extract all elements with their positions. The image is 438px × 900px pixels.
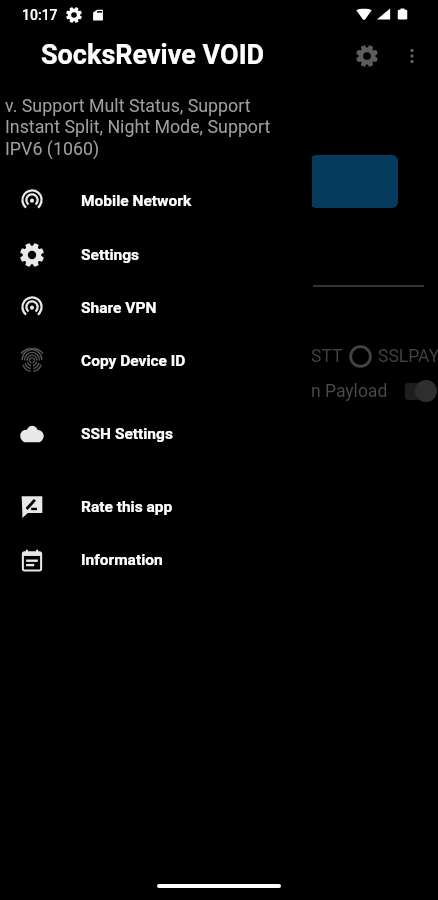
staticText: SocksRevive VOID — [41, 39, 265, 71]
button[interactable]: Information — [0, 536, 312, 584]
staticText: Share VPN — [81, 299, 157, 317]
button[interactable]: Settings — [344, 33, 390, 79]
staticText: n Payload — [311, 381, 388, 402]
staticText: 10:17 — [22, 7, 58, 23]
button[interactable]: SSH Settings — [0, 410, 312, 458]
button[interactable]: Share VPN — [0, 284, 312, 332]
button[interactable]: More options — [390, 34, 434, 78]
staticText: SSH Settings — [81, 425, 173, 443]
staticText: Mobile Network — [81, 192, 192, 210]
staticText: Settings — [81, 246, 140, 264]
staticText: Copy Device ID — [81, 352, 186, 370]
staticText: SSLPAY — [378, 346, 438, 367]
staticText: STT — [311, 346, 343, 367]
button[interactable]: Rate this app — [0, 483, 312, 531]
staticText: Rate this app — [81, 498, 173, 516]
button[interactable]: Copy Device ID — [0, 337, 312, 385]
button[interactable] — [310, 155, 398, 208]
button[interactable]: Settings — [0, 231, 312, 279]
staticText: Information — [81, 551, 163, 569]
staticText: v. Support Mult Status, Support Instant … — [5, 95, 287, 160]
button[interactable]: Mobile Network — [0, 177, 312, 225]
